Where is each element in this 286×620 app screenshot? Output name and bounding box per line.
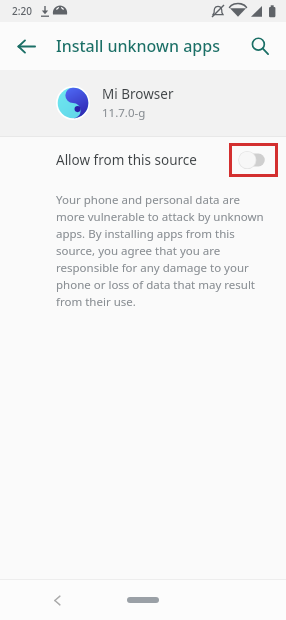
staticText: Mi Browser: [102, 85, 174, 103]
button[interactable]: Allow from this source: [0, 137, 286, 183]
staticText: Allow from this source: [56, 151, 197, 169]
button[interactable]: Back: [6, 26, 46, 66]
staticText: Your phone and personal data are more vu…: [56, 192, 270, 309]
staticText: 2:20: [12, 4, 32, 18]
button[interactable]: Home: [121, 593, 165, 607]
staticText: 11.7.0-g: [102, 105, 146, 121]
staticText: Install unknown apps: [56, 35, 220, 57]
button[interactable]: Search: [240, 26, 280, 66]
button[interactable]: Back: [38, 581, 76, 619]
button[interactable]: Allow from this source toggle: [229, 143, 278, 177]
